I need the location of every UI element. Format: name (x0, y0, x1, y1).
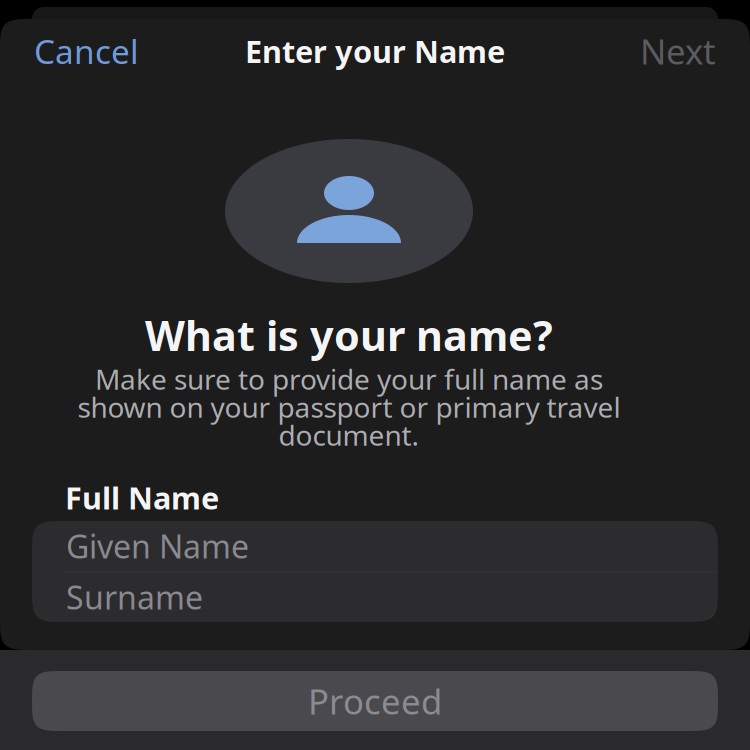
staticText: Given Name (66, 525, 249, 567)
staticText: Next (640, 28, 716, 74)
staticText: Make sure to provide your full name as (95, 360, 603, 398)
button[interactable]: Given Name (32, 521, 718, 571)
staticText: Full Name (65, 477, 219, 518)
staticText: What is your name? (145, 308, 553, 362)
button[interactable]: Surname (32, 572, 718, 622)
staticText: Surname (66, 576, 203, 618)
button[interactable]: Proceed (32, 671, 718, 731)
staticText: Cancel (34, 29, 139, 73)
staticText: Proceed (308, 678, 442, 724)
staticText: Enter your Name (245, 31, 505, 71)
staticText: shown on your passport or primary travel (77, 388, 620, 426)
button[interactable]: Next (640, 28, 716, 74)
button[interactable]: Cancel (34, 29, 139, 73)
staticText: document. (278, 416, 419, 454)
